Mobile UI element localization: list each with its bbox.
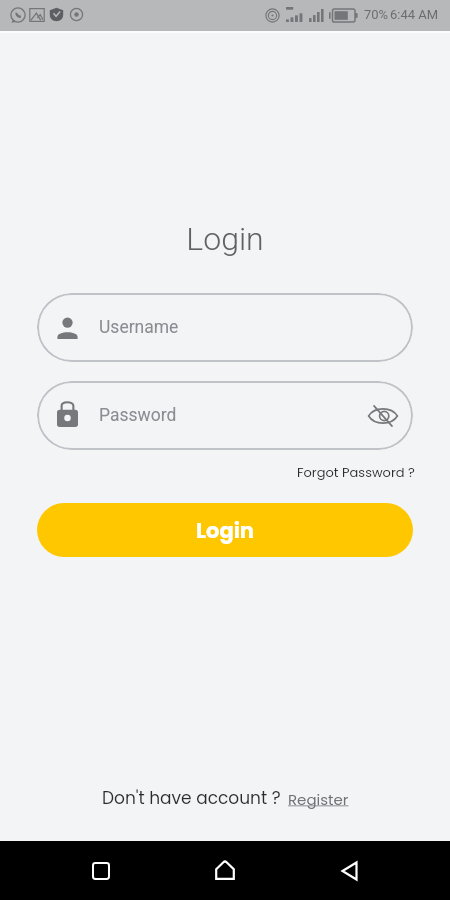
staticText: Register — [288, 789, 349, 810]
button[interactable]: Username — [37, 293, 413, 362]
staticText: Password — [99, 405, 177, 426]
button[interactable]: Login — [37, 503, 413, 557]
staticText: Forgot Password ? — [297, 463, 415, 481]
button[interactable]: Register — [288, 789, 349, 810]
button[interactable]: Recent apps — [70, 841, 131, 900]
staticText: Login — [196, 516, 255, 545]
staticText: Login — [0, 220, 450, 258]
staticText: 6:44 AM — [390, 7, 439, 22]
button[interactable]: Show password — [368, 405, 398, 427]
button[interactable]: Back — [319, 841, 380, 900]
staticText: Username — [99, 317, 179, 338]
button[interactable]: Forgot Password ? — [295, 461, 417, 483]
staticText: 70% — [364, 7, 389, 22]
button[interactable]: Password — [37, 381, 413, 450]
button[interactable]: Home — [194, 841, 256, 900]
staticText: Don't have account ? — [102, 786, 281, 810]
